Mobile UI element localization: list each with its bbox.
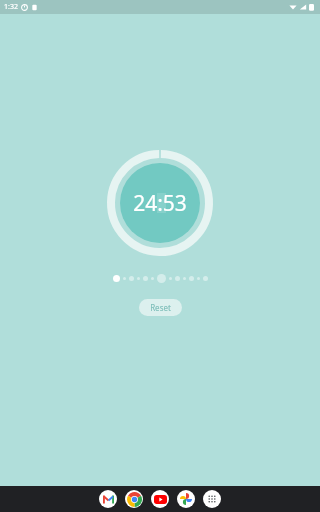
button[interactable]: Photos — [177, 490, 195, 508]
staticText: Reset — [150, 302, 171, 313]
button[interactable]: All apps — [203, 490, 221, 508]
button[interactable]: Reset — [139, 299, 182, 316]
button[interactable]: YouTube — [151, 490, 169, 508]
staticText: 1:32 — [4, 2, 18, 12]
button[interactable]: Gmail — [99, 490, 117, 508]
staticText: 24:53 — [133, 189, 187, 218]
button[interactable]: Chrome — [125, 490, 143, 508]
